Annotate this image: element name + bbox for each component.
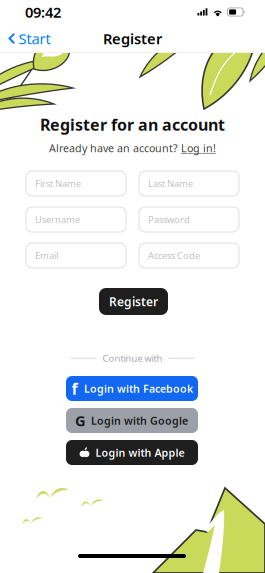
button[interactable]: Register: [99, 288, 168, 315]
staticText: Register for an account: [40, 114, 225, 135]
staticText: Register: [103, 29, 162, 48]
button[interactable]: G: [66, 408, 198, 433]
staticText: 09:42: [25, 2, 61, 22]
staticText: Log in!: [181, 141, 216, 155]
staticText: Start: [18, 29, 50, 48]
staticText: Register: [109, 293, 158, 309]
staticText: Password: [148, 213, 190, 226]
staticText: Already have an account?: [49, 141, 181, 155]
button[interactable]: Log in!: [181, 141, 216, 155]
staticText: Username: [35, 213, 80, 226]
staticText: Access Code: [148, 249, 200, 262]
staticText: Login with Apple: [95, 445, 184, 460]
staticText: First Name: [35, 177, 81, 190]
button[interactable]: Login with Apple: [66, 440, 198, 465]
staticText: Email: [35, 249, 58, 262]
staticText: Login with Facebook: [84, 381, 193, 396]
button[interactable]: Start: [0, 23, 50, 54]
staticText: Continue with: [102, 352, 162, 364]
staticText: Login with Google: [91, 413, 188, 428]
staticText: f: [71, 378, 77, 399]
staticText: Last Name: [148, 177, 193, 190]
button[interactable]: f: [66, 376, 198, 401]
staticText: G: [75, 411, 86, 430]
